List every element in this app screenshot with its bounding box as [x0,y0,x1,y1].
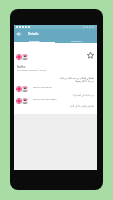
staticText: DIALECTS [71,39,82,42]
staticText: السلام عليكم يا أهل الدار [14,104,94,107]
button[interactable]: Add to favourites [14,43,97,114]
staticText: hello in the desert [33,86,52,89]
button[interactable]: PHRASES [14,38,55,42]
staticText: hello [17,64,26,69]
button[interactable]: DIALECTS [55,38,97,42]
staticText: مرحبا / أهلا وسهلا [14,79,94,83]
staticText: PHRASES [29,39,40,42]
staticText: hello in the Gulf region [33,98,57,101]
staticText: as-salaam 'alaykum / ahlan [17,69,47,72]
button[interactable]: Back [15,29,22,38]
staticText: Details [28,32,39,36]
staticText: مرحبا بك في الصحراء [14,93,94,96]
staticText: السلام عليكم ورحمة الله وبركاته [14,76,94,80]
button[interactable]: Add to favourites [86,51,94,59]
